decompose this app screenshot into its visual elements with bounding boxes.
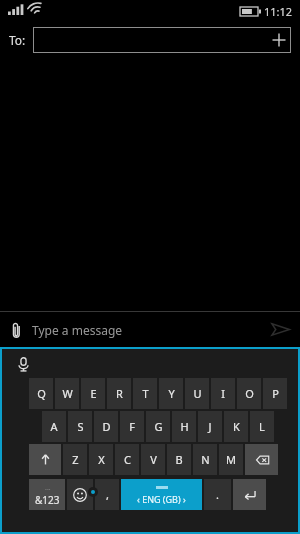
staticText: U (193, 386, 202, 401)
staticText: Z (72, 452, 79, 467)
staticText: &123 (35, 493, 60, 507)
staticText: J (208, 419, 212, 434)
button[interactable]: . (204, 479, 231, 510)
button[interactable]: ‹ ENG (GB) › (121, 479, 202, 510)
button[interactable]: O (237, 378, 261, 409)
staticText: A (50, 419, 58, 434)
button[interactable]: Q (29, 378, 53, 409)
staticText: G (154, 419, 163, 434)
staticText: ‹ ENG (GB) › (137, 493, 186, 505)
staticText: K (233, 419, 240, 434)
staticText: , (106, 487, 109, 502)
button[interactable]: N (193, 444, 217, 475)
button[interactable]: Enter (233, 479, 266, 510)
staticText: Y (168, 386, 175, 401)
button[interactable]: K (224, 411, 248, 442)
staticText: R (116, 386, 123, 401)
button[interactable]: Backspace (245, 444, 278, 475)
button[interactable]: Z (63, 444, 87, 475)
button[interactable]: C (115, 444, 139, 475)
button[interactable]: I (211, 378, 235, 409)
button[interactable]: A (42, 411, 66, 442)
button[interactable]: M (219, 444, 243, 475)
button[interactable]: P (263, 378, 287, 409)
staticText: P (272, 386, 279, 401)
button[interactable]: L (250, 411, 274, 442)
staticText: S (77, 419, 84, 434)
button[interactable]: ... (29, 479, 65, 510)
button[interactable]: U (185, 378, 209, 409)
button[interactable]: Send (260, 312, 300, 347)
staticText: O (245, 386, 254, 401)
button[interactable]: Attach file (0, 314, 32, 346)
button[interactable]: Shift (29, 444, 61, 475)
staticText: I (221, 386, 225, 401)
button[interactable]: R (107, 378, 131, 409)
button[interactable]: Add recipient (33, 27, 291, 53)
staticText: C (124, 452, 131, 467)
button[interactable]: T (133, 378, 157, 409)
staticText: 11:12 (264, 4, 293, 19)
staticText: N (201, 452, 210, 467)
staticText: H (180, 419, 189, 434)
button[interactable]: F (120, 411, 144, 442)
staticText: M (226, 452, 236, 467)
staticText: To: (9, 32, 26, 48)
staticText: Type a message (32, 322, 123, 338)
staticText: L (259, 419, 265, 434)
button[interactable]: X (89, 444, 113, 475)
button[interactable]: E (81, 378, 105, 409)
staticText: D (102, 419, 111, 434)
staticText: F (129, 419, 135, 434)
button[interactable]: D (94, 411, 118, 442)
staticText: . (216, 487, 219, 502)
button[interactable]: W (55, 378, 79, 409)
staticText: E (90, 386, 97, 401)
staticText: X (98, 452, 105, 467)
staticText: V (150, 452, 157, 467)
staticText: ... (45, 483, 51, 493)
button[interactable]: V (141, 444, 165, 475)
button[interactable]: J (198, 411, 222, 442)
button[interactable]: B (167, 444, 191, 475)
button[interactable]: Y (159, 378, 183, 409)
button[interactable]: Emoji (67, 479, 93, 510)
button[interactable]: G (146, 411, 170, 442)
button[interactable]: Type a message (32, 312, 260, 347)
staticText: Q (37, 386, 46, 401)
button[interactable]: S (68, 411, 92, 442)
button[interactable]: Voice input (12, 353, 34, 375)
staticText: T (142, 386, 149, 401)
button[interactable]: , (95, 479, 119, 510)
button[interactable]: H (172, 411, 196, 442)
staticText: W (62, 386, 73, 401)
staticText: B (175, 452, 183, 467)
